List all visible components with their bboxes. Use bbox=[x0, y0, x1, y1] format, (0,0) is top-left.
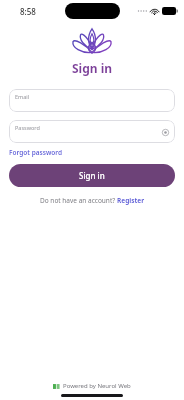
button[interactable]: Show password bbox=[160, 127, 170, 137]
button[interactable]: Password bbox=[9, 120, 175, 143]
staticText: Email bbox=[15, 93, 30, 100]
button[interactable]: Register bbox=[117, 196, 145, 205]
button[interactable]: Forgot password bbox=[9, 148, 63, 157]
button[interactable]: Email bbox=[9, 89, 175, 112]
staticText: Powered by Neurol Web bbox=[63, 382, 131, 390]
staticText: Sign in bbox=[79, 170, 105, 181]
staticText: 8:58 bbox=[20, 6, 36, 17]
staticText: Password bbox=[15, 124, 40, 131]
button[interactable]: Sign in bbox=[9, 164, 175, 187]
staticText: Do not have an account? bbox=[40, 196, 117, 205]
staticText: Sign in bbox=[72, 60, 113, 76]
